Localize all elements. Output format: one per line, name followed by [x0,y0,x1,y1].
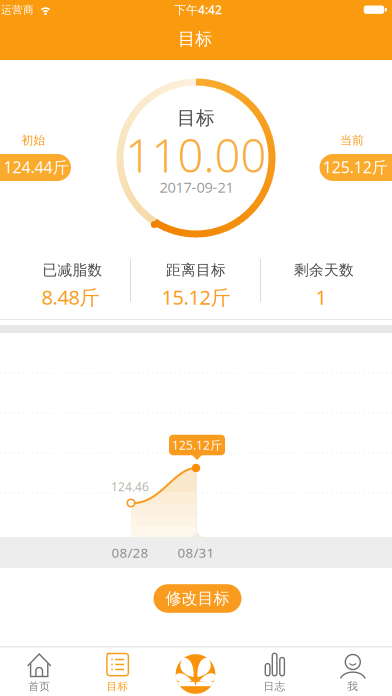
staticText: 目标 [178,28,212,50]
staticText: 目标 [177,106,215,129]
staticText: 2017-09-21 [159,177,233,197]
staticText: 1 [315,284,326,310]
staticText: 我 [347,680,358,693]
button[interactable]: 目标 [78,647,157,695]
staticText: 修改目标 [165,589,229,608]
staticText: 已减脂数 [42,261,102,279]
staticText: 当前 [340,133,364,148]
staticText: 08/31 [177,544,214,561]
staticText: 124.46 [111,478,149,494]
staticText: 125.12斤 [172,437,222,453]
button[interactable]: 我 [314,647,392,695]
staticText: 剩余天数 [294,261,354,279]
button[interactable]: 日志 [235,647,314,695]
staticText: 目标 [107,680,129,693]
staticText: 初始 [21,133,45,148]
staticText: 110.00 [125,125,266,185]
staticText: 运营商 [1,3,34,16]
staticText: 8.48斤 [41,284,99,310]
staticText: 下午4:42 [174,1,222,17]
staticText: 日志 [263,680,285,693]
staticText: 124.44斤 [3,156,68,178]
staticText: 15.12斤 [161,284,230,310]
button[interactable]: 首页 [0,647,78,695]
button[interactable]: 修改目标 [153,584,241,613]
button[interactable] [171,650,219,696]
staticText: 首页 [28,680,50,693]
staticText: 125.12斤 [323,156,388,178]
staticText: 08/28 [111,544,148,561]
staticText: 距离目标 [166,261,226,279]
